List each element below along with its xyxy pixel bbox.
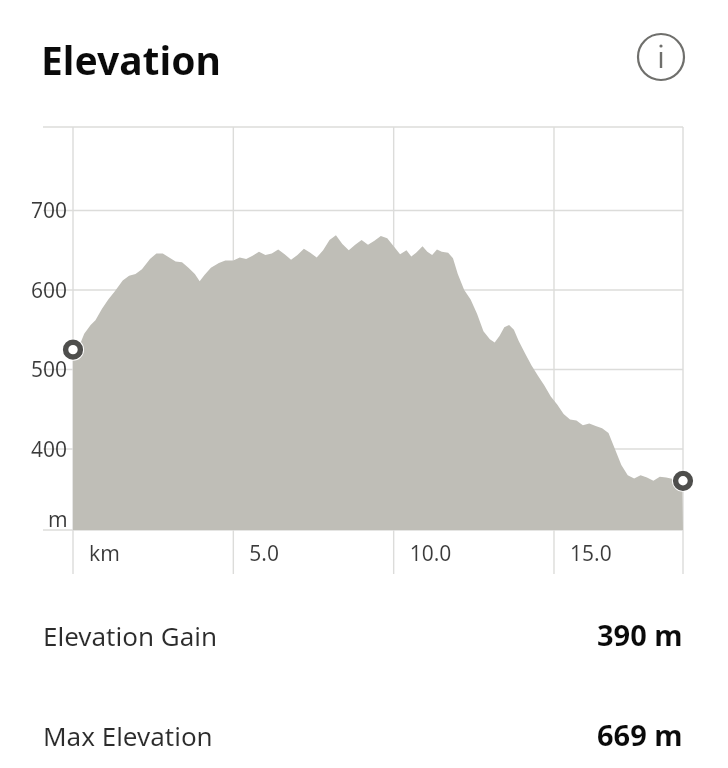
button[interactable]: Information about elevation — [636, 32, 686, 82]
button[interactable] — [0, 602, 728, 670]
button[interactable] — [0, 702, 728, 768]
